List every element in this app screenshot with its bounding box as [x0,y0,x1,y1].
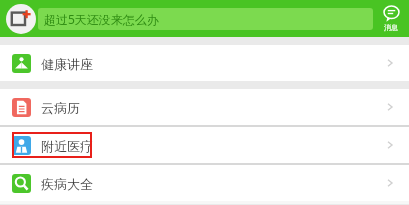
staticText: 健康讲座 [41,56,93,72]
staticText: 附近医疗 [41,138,93,154]
staticText: 消息 [384,23,398,32]
button[interactable]: 附近医疗 [0,127,409,163]
button[interactable]: 消息 [373,0,409,37]
staticText: 云病历 [41,100,80,116]
staticText: 超过5天还没来怎么办 [44,11,159,27]
button[interactable]: Add photo [6,4,36,34]
button[interactable]: 超过5天还没来怎么办 [38,8,373,30]
staticText: 疾病大全 [41,176,93,192]
button[interactable]: 云病历 [0,89,409,125]
button[interactable]: 疾病大全 [0,165,409,201]
button[interactable]: 健康讲座 [0,45,409,81]
